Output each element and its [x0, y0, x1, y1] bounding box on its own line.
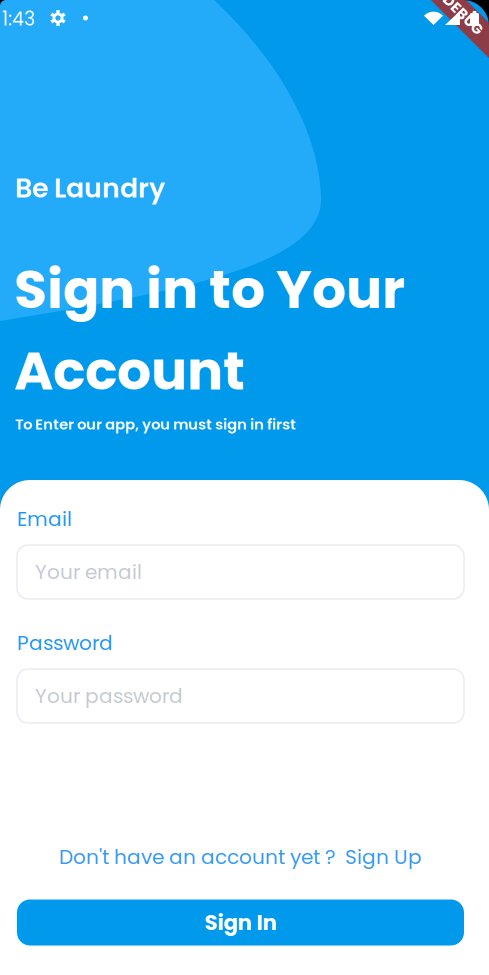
staticText: DEBUG	[438, 4, 488, 25]
button[interactable]: Your password	[17, 669, 464, 723]
staticText: Password	[17, 629, 113, 657]
staticText: Don't have an account yet ? Sign Up	[59, 843, 422, 871]
staticText: Sign In	[204, 908, 276, 937]
staticText: Account	[14, 333, 245, 408]
button[interactable]: Your email	[17, 545, 464, 599]
button[interactable]: Sign In	[17, 899, 464, 945]
staticText: Email	[17, 505, 72, 533]
staticText: Be Laundry	[15, 169, 165, 207]
staticText: Your password	[35, 682, 183, 710]
button[interactable]: Don't have an account yet ? Sign Up	[17, 843, 464, 871]
staticText: Sign in to Your	[14, 252, 405, 327]
staticText: Your email	[35, 558, 142, 586]
staticText: 1:43	[2, 6, 35, 32]
staticText: To Enter our app, you must sign in first	[15, 414, 296, 434]
